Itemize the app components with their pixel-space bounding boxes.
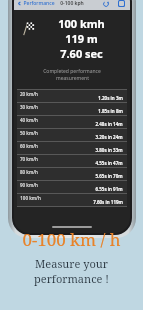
staticText: 40 km/h	[20, 117, 38, 123]
staticText: Completed performance	[43, 68, 101, 75]
button[interactable]: 30 km/h	[17, 103, 127, 116]
staticText: 100 kmh	[58, 16, 105, 31]
staticText: 2.48s in 14m	[95, 121, 123, 127]
staticText: 3.20s in 24m	[95, 134, 123, 140]
button[interactable]: 40 km/h	[17, 116, 127, 129]
staticText: measurement	[56, 75, 89, 82]
staticText: 1.85s in 8m	[98, 108, 123, 114]
staticText: Measure your performance !	[0, 256, 143, 286]
staticText: 0-100 km / h	[22, 228, 121, 251]
staticText: 6.55s in 91m	[95, 186, 123, 192]
staticText: 0-100 kph	[60, 0, 84, 7]
staticText: 20 km/h	[20, 91, 38, 97]
staticText: 7.60 sec	[60, 46, 103, 61]
staticText: 80 km/h	[20, 169, 38, 175]
button[interactable]: 70 km/h	[17, 155, 127, 168]
button[interactable]: Performance	[14, 0, 57, 7]
staticText: 5.65s in 70m	[95, 173, 123, 179]
button[interactable]: 60 km/h	[17, 142, 127, 155]
button[interactable]: Open folder	[117, 0, 126, 8]
staticText: 100 km/h	[20, 195, 41, 201]
staticText: 70 km/h	[20, 156, 38, 162]
button[interactable]: 80 km/h	[17, 168, 127, 181]
staticText: 1.20s in 3m	[98, 95, 123, 101]
staticText: 50 km/h	[20, 130, 38, 136]
staticText: 3.80s in 33m	[95, 147, 123, 153]
button[interactable]: 50 km/h	[17, 129, 127, 142]
staticText: 4.55s in 47m	[95, 160, 123, 166]
button[interactable]: 100 km/h	[17, 194, 127, 207]
staticText: 90 km/h	[20, 182, 38, 188]
staticText: 7.60s in 119m	[93, 199, 123, 205]
button[interactable]: Refresh	[101, 0, 110, 8]
button[interactable]: 20 km/h	[17, 89, 127, 103]
staticText: Performance	[23, 0, 55, 7]
staticText: 119 m	[65, 31, 98, 46]
button[interactable]: 90 km/h	[17, 181, 127, 194]
staticText: 60 km/h	[20, 143, 38, 149]
staticText: 30 km/h	[20, 104, 38, 110]
